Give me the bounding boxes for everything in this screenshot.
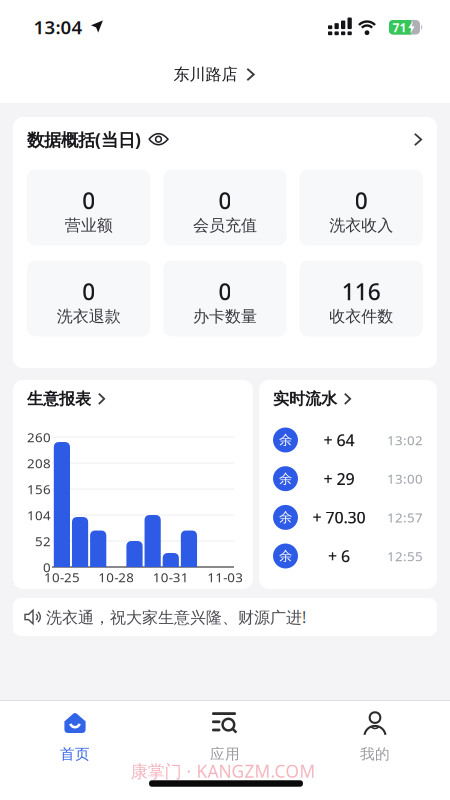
staticText: 0 [82,276,95,306]
staticText: 东川路店 [173,65,237,84]
staticText: 0 [355,185,368,215]
staticText: + 6 [328,545,350,567]
staticText: 0 [82,185,95,215]
staticText: 13:04 [33,15,82,39]
staticText: 10-28 [98,568,134,586]
staticText: 0 [43,558,51,576]
button[interactable]: 东川路店 [173,65,254,84]
staticText: + 64 [323,429,354,451]
staticText: 洗衣通，祝大家生意兴隆、财源广进! [46,606,306,628]
staticText: 办卡数量 [193,307,257,326]
staticText: 会员充值 [193,216,257,235]
staticText: 余 [279,470,292,487]
button[interactable]: 应用 [150,700,300,766]
staticText: 洗衣退款 [57,307,121,326]
staticText: 应用 [210,745,240,763]
staticText: 11-03 [207,568,243,586]
staticText: 10-25 [44,568,80,586]
staticText: 13:02 [387,431,423,449]
button[interactable]: 首页 [0,700,150,766]
staticText: 收衣件数 [329,307,393,326]
staticText: 0 [218,185,231,215]
button[interactable]: 查看数据详情 [414,133,422,146]
button[interactable]: 生意报表 [27,389,105,409]
staticText: 208 [27,454,51,472]
button[interactable]: 我的 [300,700,450,766]
staticText: 116 [342,276,381,306]
staticText: 余 [279,509,292,526]
staticText: 260 [27,428,51,446]
button[interactable]: 实时流水 [273,389,351,409]
staticText: 洗衣收入 [329,216,393,235]
staticText: 12:55 [387,547,423,565]
staticText: 实时流水 [273,389,337,409]
staticText: 104 [27,506,51,524]
staticText: 康掌门 · KANGZM.COM [130,759,315,782]
staticText: + 70.30 [312,507,365,528]
staticText: 13:00 [387,470,423,487]
staticText: 0 [218,276,231,306]
staticText: 52 [35,532,51,550]
staticText: 71 [392,20,406,35]
staticText: 余 [279,548,292,564]
staticText: 12:57 [387,508,423,526]
staticText: 生意报表 [27,389,91,409]
staticText: 10-31 [153,568,189,586]
staticText: 余 [279,432,292,448]
staticText: 营业额 [65,216,113,235]
button[interactable]: 数据概括(当日) [27,128,141,151]
staticText: 数据概括(当日) [27,128,141,151]
staticText: + 29 [323,468,354,489]
button[interactable]: 隐藏数据 [148,132,169,147]
staticText: 首页 [60,745,90,763]
staticText: 我的 [360,745,390,763]
staticText: 156 [27,480,51,498]
